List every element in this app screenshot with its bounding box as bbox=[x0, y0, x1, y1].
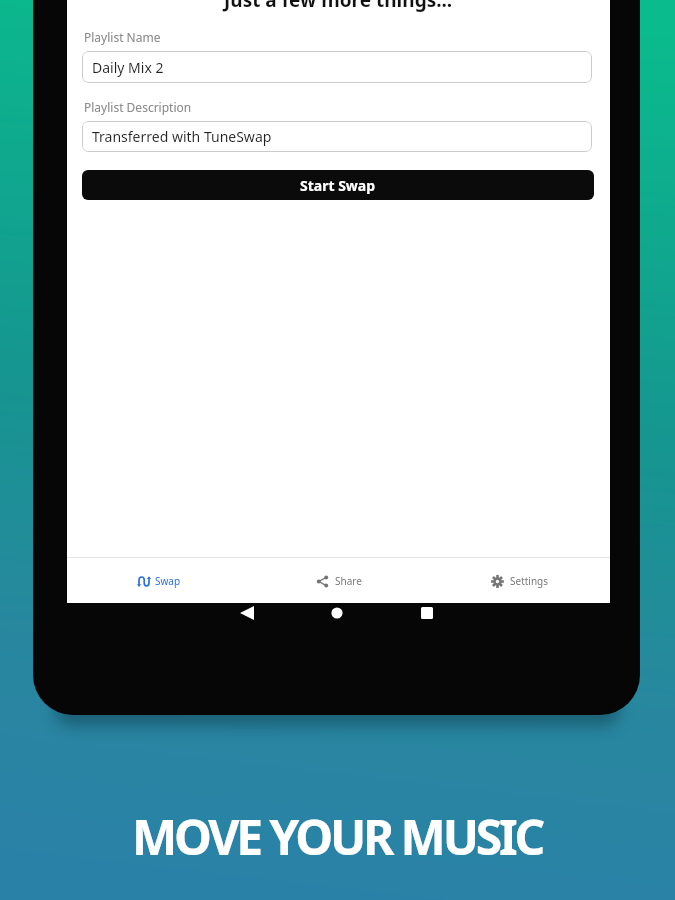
button[interactable]: Daily Mix 2 bbox=[82, 51, 592, 83]
button[interactable]: Swap bbox=[67, 558, 248, 603]
staticText: Just a few more things... bbox=[224, 0, 453, 13]
staticText: Daily Mix 2 bbox=[92, 58, 164, 77]
staticText: Settings bbox=[510, 574, 549, 588]
staticText: Playlist Name bbox=[84, 29, 161, 45]
button[interactable] bbox=[229, 595, 265, 631]
staticText: Start Swap bbox=[300, 176, 376, 195]
button[interactable] bbox=[319, 595, 355, 631]
button[interactable]: Settings bbox=[429, 558, 610, 603]
staticText: Share bbox=[335, 574, 362, 588]
staticText: Playlist Description bbox=[84, 99, 192, 115]
button[interactable] bbox=[409, 595, 445, 631]
button[interactable]: Transferred with TuneSwap bbox=[82, 121, 592, 152]
staticText: MOVE YOUR MUSIC bbox=[132, 804, 543, 869]
staticText: Transferred with TuneSwap bbox=[92, 127, 272, 146]
button[interactable]: Start Swap bbox=[82, 170, 594, 200]
button[interactable]: Share bbox=[248, 558, 429, 603]
staticText: Swap bbox=[155, 574, 181, 588]
